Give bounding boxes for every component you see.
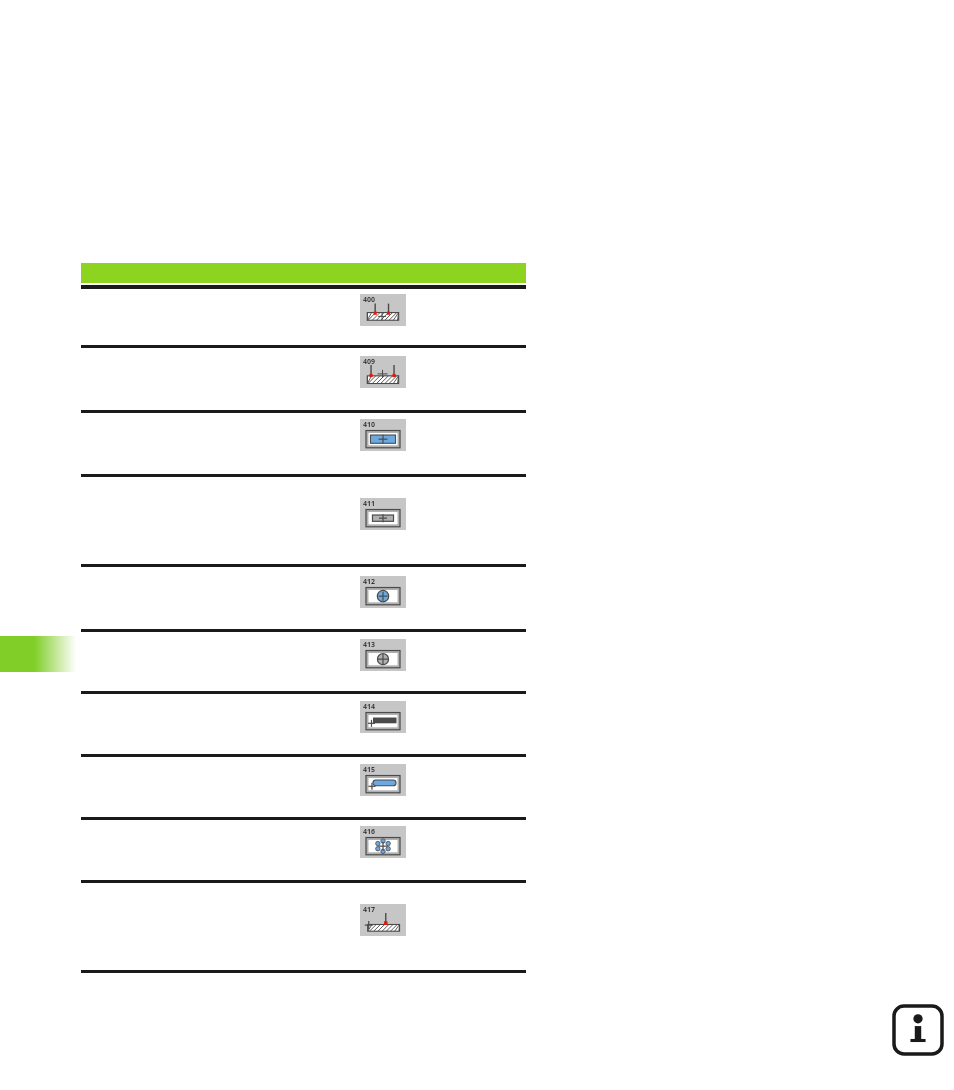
staticText: 416: [363, 827, 376, 837]
staticText: 409: [363, 357, 376, 367]
staticText: 413: [363, 640, 376, 650]
button[interactable]: Cycle 415: [360, 764, 406, 796]
button[interactable]: Cycle 417: [360, 904, 406, 936]
button[interactable]: Cycle 409: [360, 356, 406, 388]
button[interactable]: Cycle 413: [360, 639, 406, 671]
button[interactable]: Cycle 416: [360, 826, 406, 858]
button[interactable]: Cycle 410: [360, 419, 406, 451]
staticText: 410: [363, 420, 376, 430]
button[interactable]: Information: [890, 1002, 946, 1058]
button[interactable]: Cycle 414: [360, 701, 406, 733]
staticText: 415: [363, 765, 376, 775]
staticText: 411: [363, 499, 376, 509]
button[interactable]: Cycle 412: [360, 576, 406, 608]
button[interactable]: Cycle 411: [360, 498, 406, 530]
staticText: 400: [363, 295, 376, 305]
staticText: 414: [363, 702, 376, 712]
button[interactable]: Cycle 400: [360, 294, 406, 326]
staticText: 412: [363, 577, 376, 587]
staticText: 417: [363, 905, 376, 915]
